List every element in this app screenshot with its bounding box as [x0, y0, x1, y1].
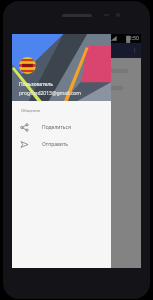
button[interactable]: Поделиться: [12, 119, 111, 136]
staticText: 22:50: [126, 35, 139, 42]
staticText: Поделиться: [42, 124, 71, 131]
staticText: Отправить: [42, 141, 68, 148]
button[interactable]: More options: [130, 46, 139, 55]
staticText: progr.md2013@gmail.com: [19, 90, 82, 97]
button[interactable]: Отправить: [12, 136, 111, 153]
staticText: Пользователь: [19, 81, 53, 88]
staticText: Общение: [21, 108, 41, 114]
